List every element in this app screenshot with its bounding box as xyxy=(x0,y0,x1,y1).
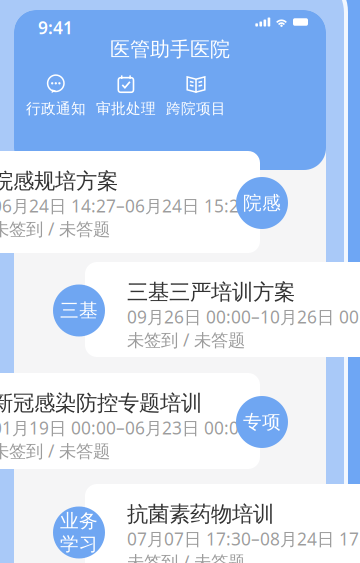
staticText: 三基三严培训方案 xyxy=(127,279,295,305)
staticText: 未签到 / 未答题 xyxy=(0,439,110,462)
staticText: 跨院项目 xyxy=(166,99,226,117)
staticText: 未签到 / 未答题 xyxy=(127,550,245,563)
button[interactable]: 行政通知 xyxy=(25,73,87,119)
staticText: 专项 xyxy=(243,410,281,433)
staticText: 行政通知 xyxy=(26,99,86,117)
staticText: 医管助手医院 xyxy=(110,37,230,62)
staticText: 抗菌素药物培训 xyxy=(127,501,274,527)
staticText: 新冠感染防控专题培训 xyxy=(0,390,202,416)
staticText: 06月24日 14:27–06月24日 15:27 xyxy=(0,194,249,217)
staticText: 学习 xyxy=(60,532,98,555)
button[interactable]: 跨院项目 xyxy=(165,73,227,119)
button[interactable]: 新冠感染防控专题培训 xyxy=(0,373,260,469)
staticText: 院感规培方案 xyxy=(0,168,118,194)
staticText: 院感 xyxy=(243,191,281,214)
staticText: 01月19日 00:00–06月23日 00:00 xyxy=(0,416,249,439)
staticText: 未签到 / 未答题 xyxy=(0,217,110,240)
staticText: 未签到 / 未答题 xyxy=(127,328,245,351)
button[interactable]: 审批处理 xyxy=(95,73,157,119)
button[interactable]: 院感规培方案 xyxy=(0,151,260,253)
staticText: 09月26日 00:00–10月26日 00:00 xyxy=(127,305,360,328)
button[interactable]: 三基三严培训方案 xyxy=(85,262,360,357)
staticText: 07月07日 17:30–08月24日 17:30 xyxy=(127,527,360,550)
button[interactable]: 抗菌素药物培训 xyxy=(85,484,360,563)
staticText: 三基 xyxy=(60,299,98,322)
staticText: 审批处理 xyxy=(96,99,156,117)
staticText: 9:41 xyxy=(38,16,73,39)
staticText: 业务 xyxy=(60,510,98,532)
